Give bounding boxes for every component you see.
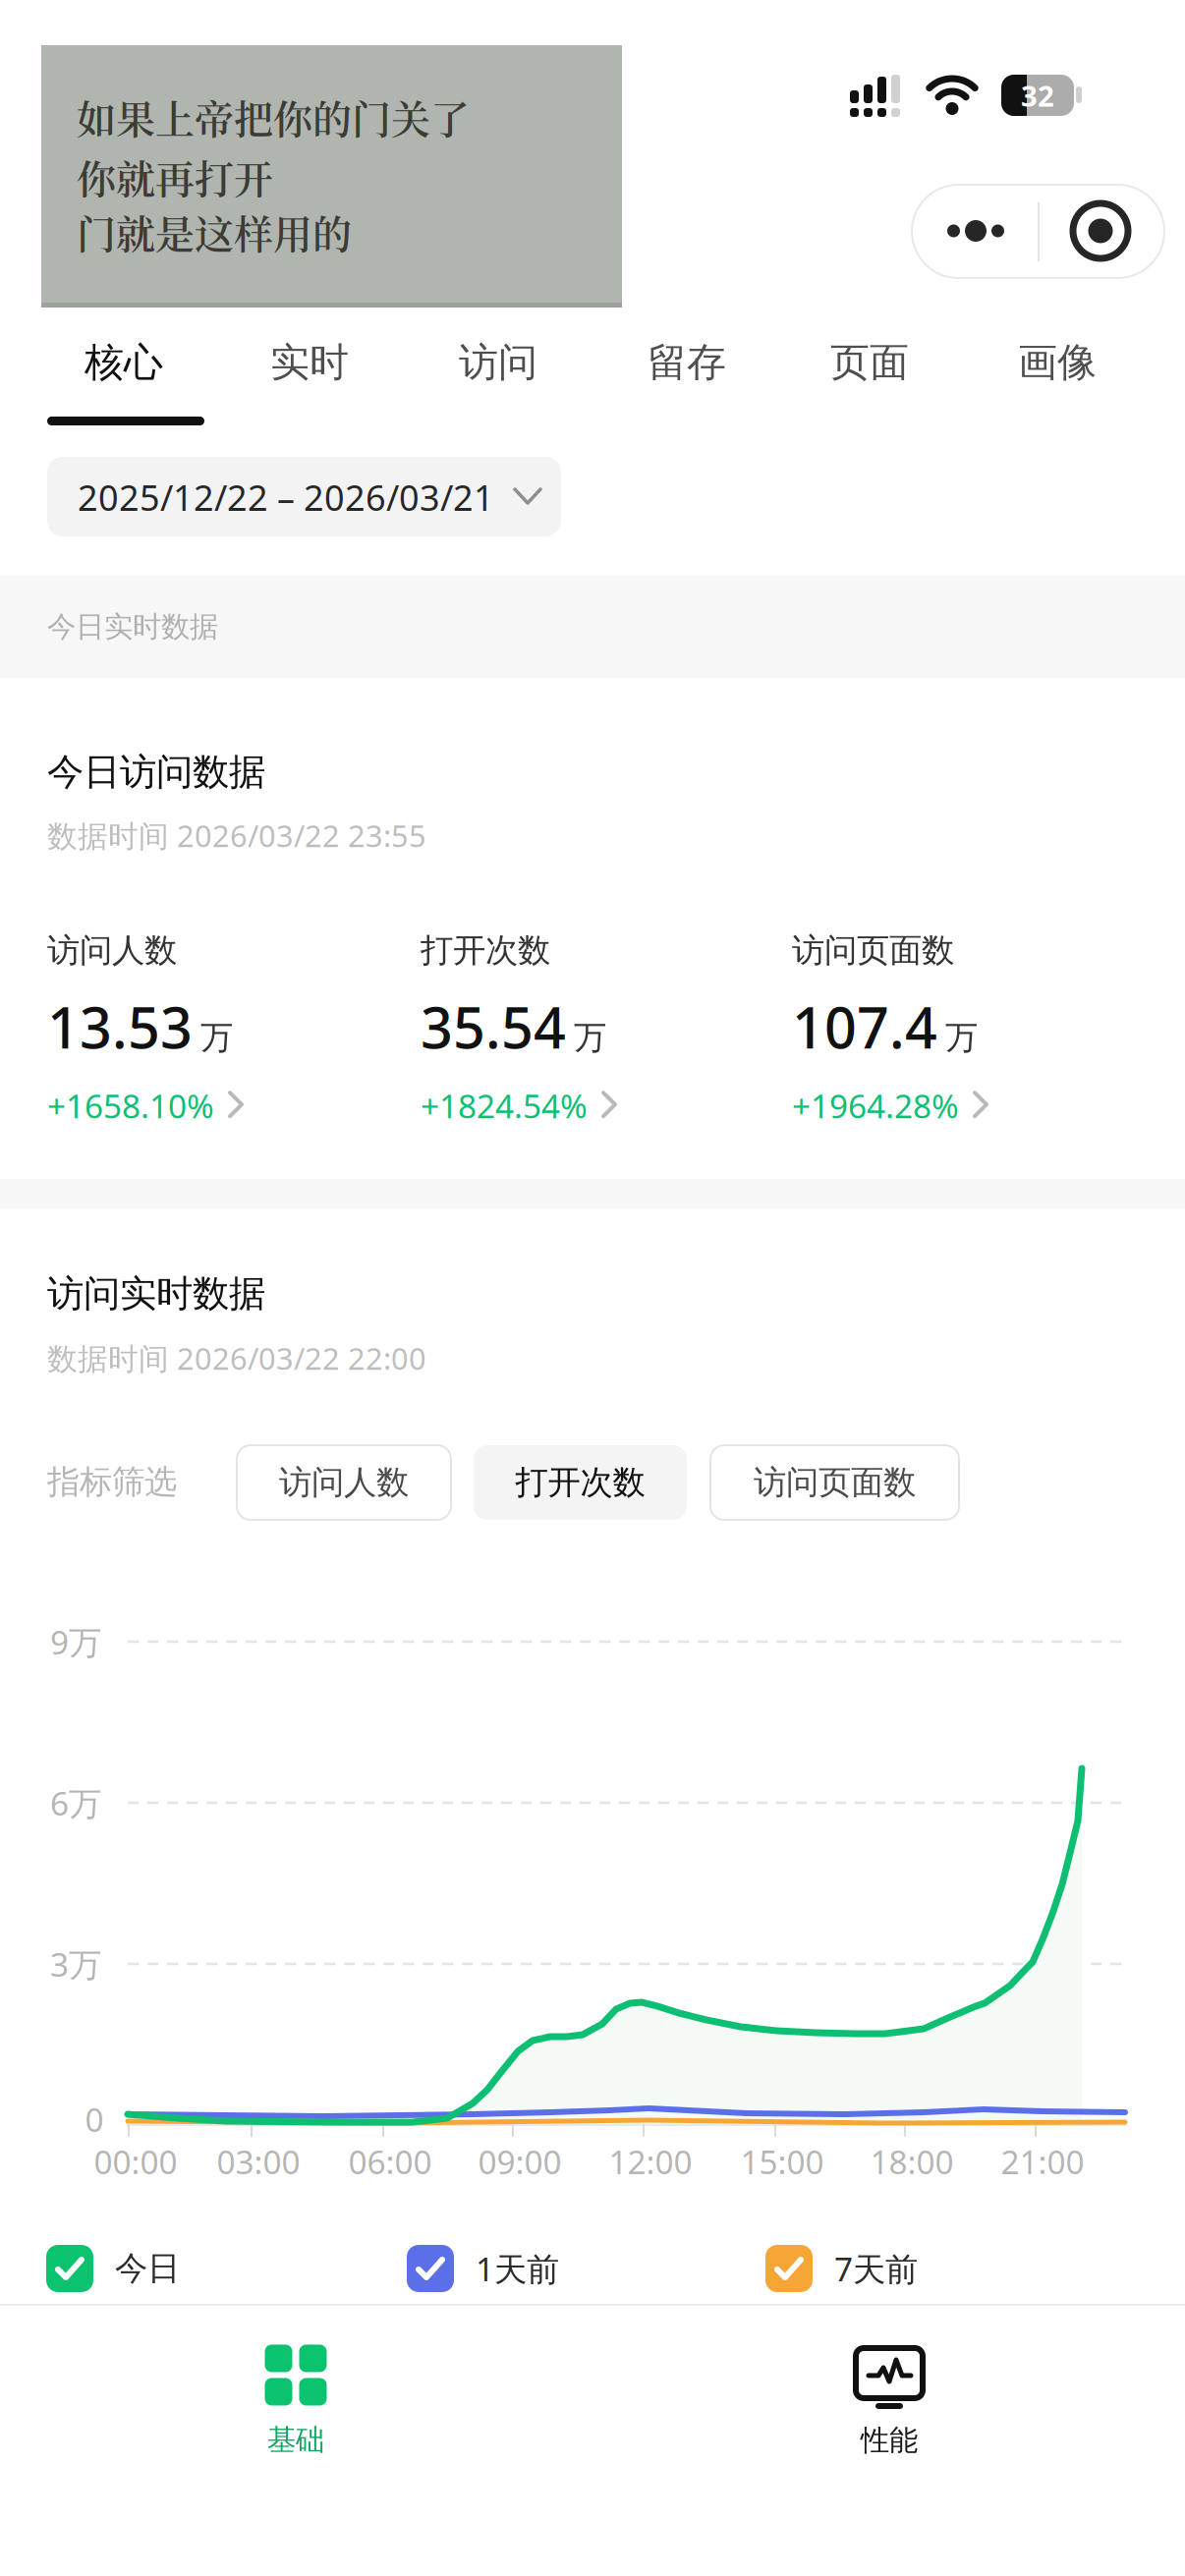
staticText: +1824.54% [421, 1084, 588, 1127]
button[interactable]: 访问页面数 [710, 1445, 959, 1520]
staticText: 画像 [1018, 338, 1097, 387]
staticText: 6万 [50, 1781, 101, 1825]
button[interactable]: 页面 [830, 338, 909, 387]
staticText: 数据时间 2026/03/22 22:00 [47, 1338, 426, 1378]
button[interactable]: 更多 [0, 0, 126, 93]
staticText: 32 [1021, 76, 1054, 114]
staticText: 9万 [50, 1620, 101, 1663]
staticText: 15:00 [740, 2140, 824, 2183]
staticText: 今日访问数据 [47, 750, 265, 795]
button[interactable]: 访问 [459, 338, 537, 387]
staticText: 今日 [115, 2248, 180, 2289]
staticText: 留存 [648, 338, 726, 387]
staticText: 访问页面数 [792, 930, 954, 971]
staticText: 访问人数 [279, 1462, 409, 1503]
button[interactable]: 关闭 [1039, 185, 1165, 278]
staticText: 如果上帝把你的门关了 [77, 89, 470, 145]
staticText: 核心 [85, 338, 163, 387]
staticText: 页面 [830, 338, 909, 387]
staticText: 访问页面数 [754, 1462, 916, 1503]
staticText: 万 [945, 1018, 978, 1058]
button[interactable]: 今日 [46, 2245, 180, 2292]
staticText: +1964.28% [792, 1084, 959, 1127]
staticText: 打开次数 [515, 1462, 645, 1503]
button[interactable]: 访问人数 [237, 1445, 451, 1520]
staticText: 0 [85, 2097, 104, 2141]
staticText: 数据时间 2026/03/22 23:55 [47, 815, 426, 855]
staticText: 2025/12/22 – 2026/03/21 [78, 474, 494, 521]
staticText: 12:00 [609, 2140, 692, 2183]
staticText: 3万 [50, 1942, 101, 1986]
staticText: 107.4 [792, 989, 937, 1064]
staticText: 13.53 [47, 989, 193, 1064]
button[interactable]: 画像 [1018, 338, 1097, 387]
staticText: 00:00 [94, 2140, 177, 2183]
button[interactable]: 性能 [856, 2348, 923, 2458]
staticText: 门就是这样用的 [77, 204, 352, 260]
staticText: 你就再打开 [77, 149, 273, 205]
button[interactable]: 核心 [85, 338, 163, 387]
staticText: 访问实时数据 [47, 1271, 265, 1316]
button[interactable]: 打开次数 [474, 1445, 687, 1520]
staticText: 性能 [861, 2423, 918, 2458]
staticText: 指标筛选 [47, 1462, 177, 1502]
staticText: 1天前 [476, 2247, 559, 2290]
staticText: 今日实时数据 [47, 609, 218, 644]
staticText: 万 [574, 1018, 606, 1058]
button[interactable]: 实时 [270, 338, 349, 387]
staticText: 访问 [459, 338, 537, 387]
button[interactable]: 1天前 [407, 2245, 559, 2292]
staticText: +1658.10% [47, 1084, 214, 1127]
staticText: 打开次数 [421, 930, 550, 971]
staticText: 06:00 [348, 2140, 432, 2183]
button[interactable]: 基础 [265, 2345, 327, 2458]
staticText: 21:00 [1001, 2140, 1084, 2183]
staticText: 09:00 [478, 2140, 562, 2183]
staticText: 访问人数 [47, 930, 177, 971]
staticText: 7天前 [834, 2247, 918, 2290]
button[interactable]: 打开次数 [421, 930, 617, 1127]
staticText: 实时 [270, 338, 349, 387]
button[interactable]: 访问人数 [47, 930, 244, 1127]
button[interactable]: 7天前 [765, 2245, 918, 2292]
staticText: 基础 [267, 2422, 324, 2458]
button[interactable]: 2025/12/22 – 2026/03/21 [47, 457, 561, 536]
staticText: 35.54 [421, 989, 566, 1064]
button[interactable]: 留存 [648, 338, 726, 387]
staticText: 18:00 [870, 2140, 954, 2183]
staticText: 万 [200, 1018, 233, 1058]
button[interactable]: 访问页面数 [792, 930, 988, 1127]
staticText: 03:00 [217, 2140, 300, 2183]
